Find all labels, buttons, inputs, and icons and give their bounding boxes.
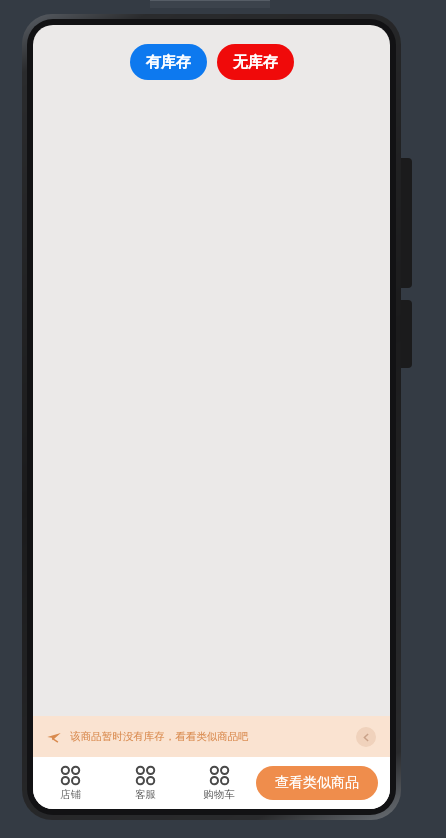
staticText: 查看类似商品: [275, 774, 359, 792]
staticText: 客服: [135, 788, 156, 801]
button[interactable]: 店铺: [33, 762, 108, 805]
staticText: 店铺: [60, 788, 81, 801]
button[interactable]: 查看类似商品: [256, 766, 378, 800]
staticText: 有库存: [146, 53, 191, 72]
button[interactable]: 无库存: [217, 44, 294, 80]
staticText: 购物车: [203, 788, 235, 801]
button[interactable]: 有库存: [130, 44, 207, 80]
staticText: 无库存: [233, 53, 278, 72]
button[interactable]: 购物车: [182, 762, 256, 805]
button[interactable]: 客服: [108, 762, 182, 805]
staticText: 该商品暂时没有库存，看看类似商品吧: [70, 730, 249, 743]
button[interactable]: Collapse: [356, 727, 376, 747]
